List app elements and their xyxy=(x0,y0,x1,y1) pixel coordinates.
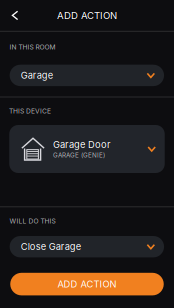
staticText: ADD ACTION xyxy=(57,10,117,21)
staticText: IN THIS ROOM xyxy=(10,43,56,51)
staticText: GARAGE (GENIE) xyxy=(53,151,105,159)
staticText: THIS DEVICE xyxy=(9,107,51,115)
button[interactable]: Garage Door xyxy=(9,125,165,173)
staticText: Close Garage xyxy=(21,241,81,252)
button[interactable]: Close Garage xyxy=(10,236,164,257)
button[interactable]: Back xyxy=(0,0,30,30)
button[interactable]: ADD ACTION xyxy=(10,273,164,295)
staticText: ADD ACTION xyxy=(57,278,116,290)
staticText: WILL DO THIS xyxy=(10,217,56,225)
staticText: Garage xyxy=(21,70,53,81)
button[interactable]: Garage xyxy=(10,65,164,86)
staticText: Garage Door xyxy=(53,139,111,150)
